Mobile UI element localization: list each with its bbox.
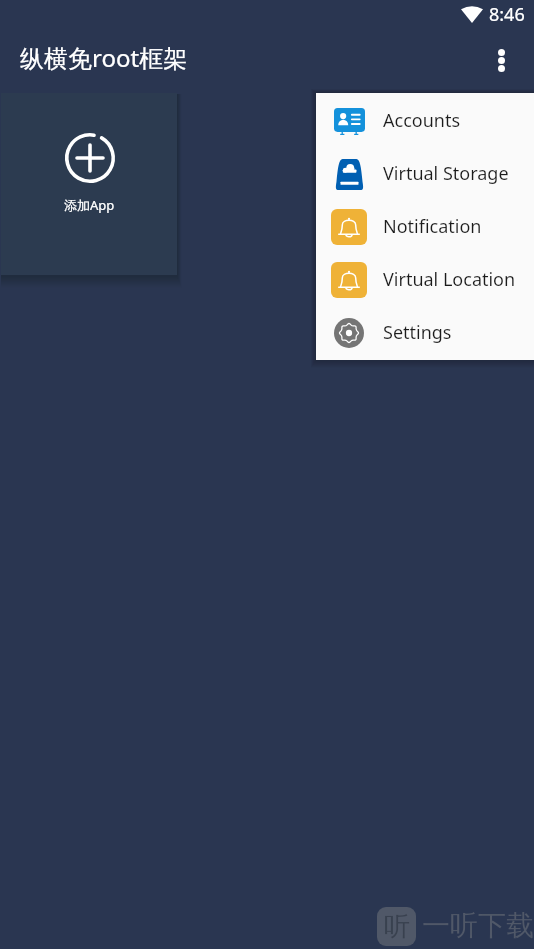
staticText: 一听下载 (422, 908, 534, 943)
button[interactable]: Settings (316, 306, 534, 359)
staticText: Virtual Storage (383, 161, 509, 186)
staticText: Notification (383, 214, 482, 239)
staticText: Settings (383, 320, 452, 345)
button[interactable]: Virtual Storage (316, 147, 534, 200)
staticText: 8:46 (489, 2, 525, 27)
staticText: 纵横免root框架 (20, 41, 188, 74)
staticText: Accounts (383, 108, 461, 133)
button[interactable]: 添加App (1, 93, 177, 275)
staticText: 添加App (64, 196, 115, 214)
staticText: 听 (384, 910, 410, 943)
staticText: Virtual Location (383, 267, 516, 292)
button[interactable]: Accounts (316, 94, 534, 147)
button[interactable]: More options (478, 37, 524, 83)
button[interactable]: Virtual Location (316, 253, 534, 306)
button[interactable]: Notification (316, 200, 534, 253)
